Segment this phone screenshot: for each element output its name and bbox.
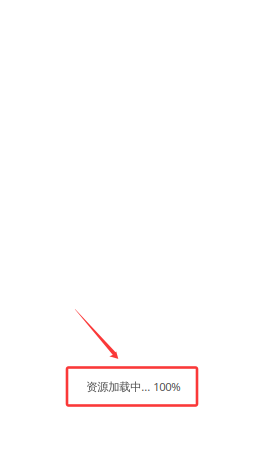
staticText: 资源加载中... 100% — [86, 379, 180, 394]
